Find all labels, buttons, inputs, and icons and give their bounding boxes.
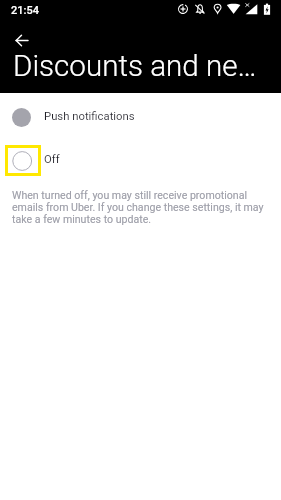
button[interactable]: Back (10, 28, 34, 52)
staticText: When turned off, you may still receive p… (12, 189, 268, 225)
staticText: Discounts and ne… (13, 49, 257, 84)
staticText: Off (44, 153, 60, 166)
staticText: Push notifications (44, 110, 135, 123)
button[interactable]: Push notifications (0, 93, 281, 141)
button[interactable]: Off (0, 141, 281, 179)
staticText: 21:54 (11, 4, 39, 17)
